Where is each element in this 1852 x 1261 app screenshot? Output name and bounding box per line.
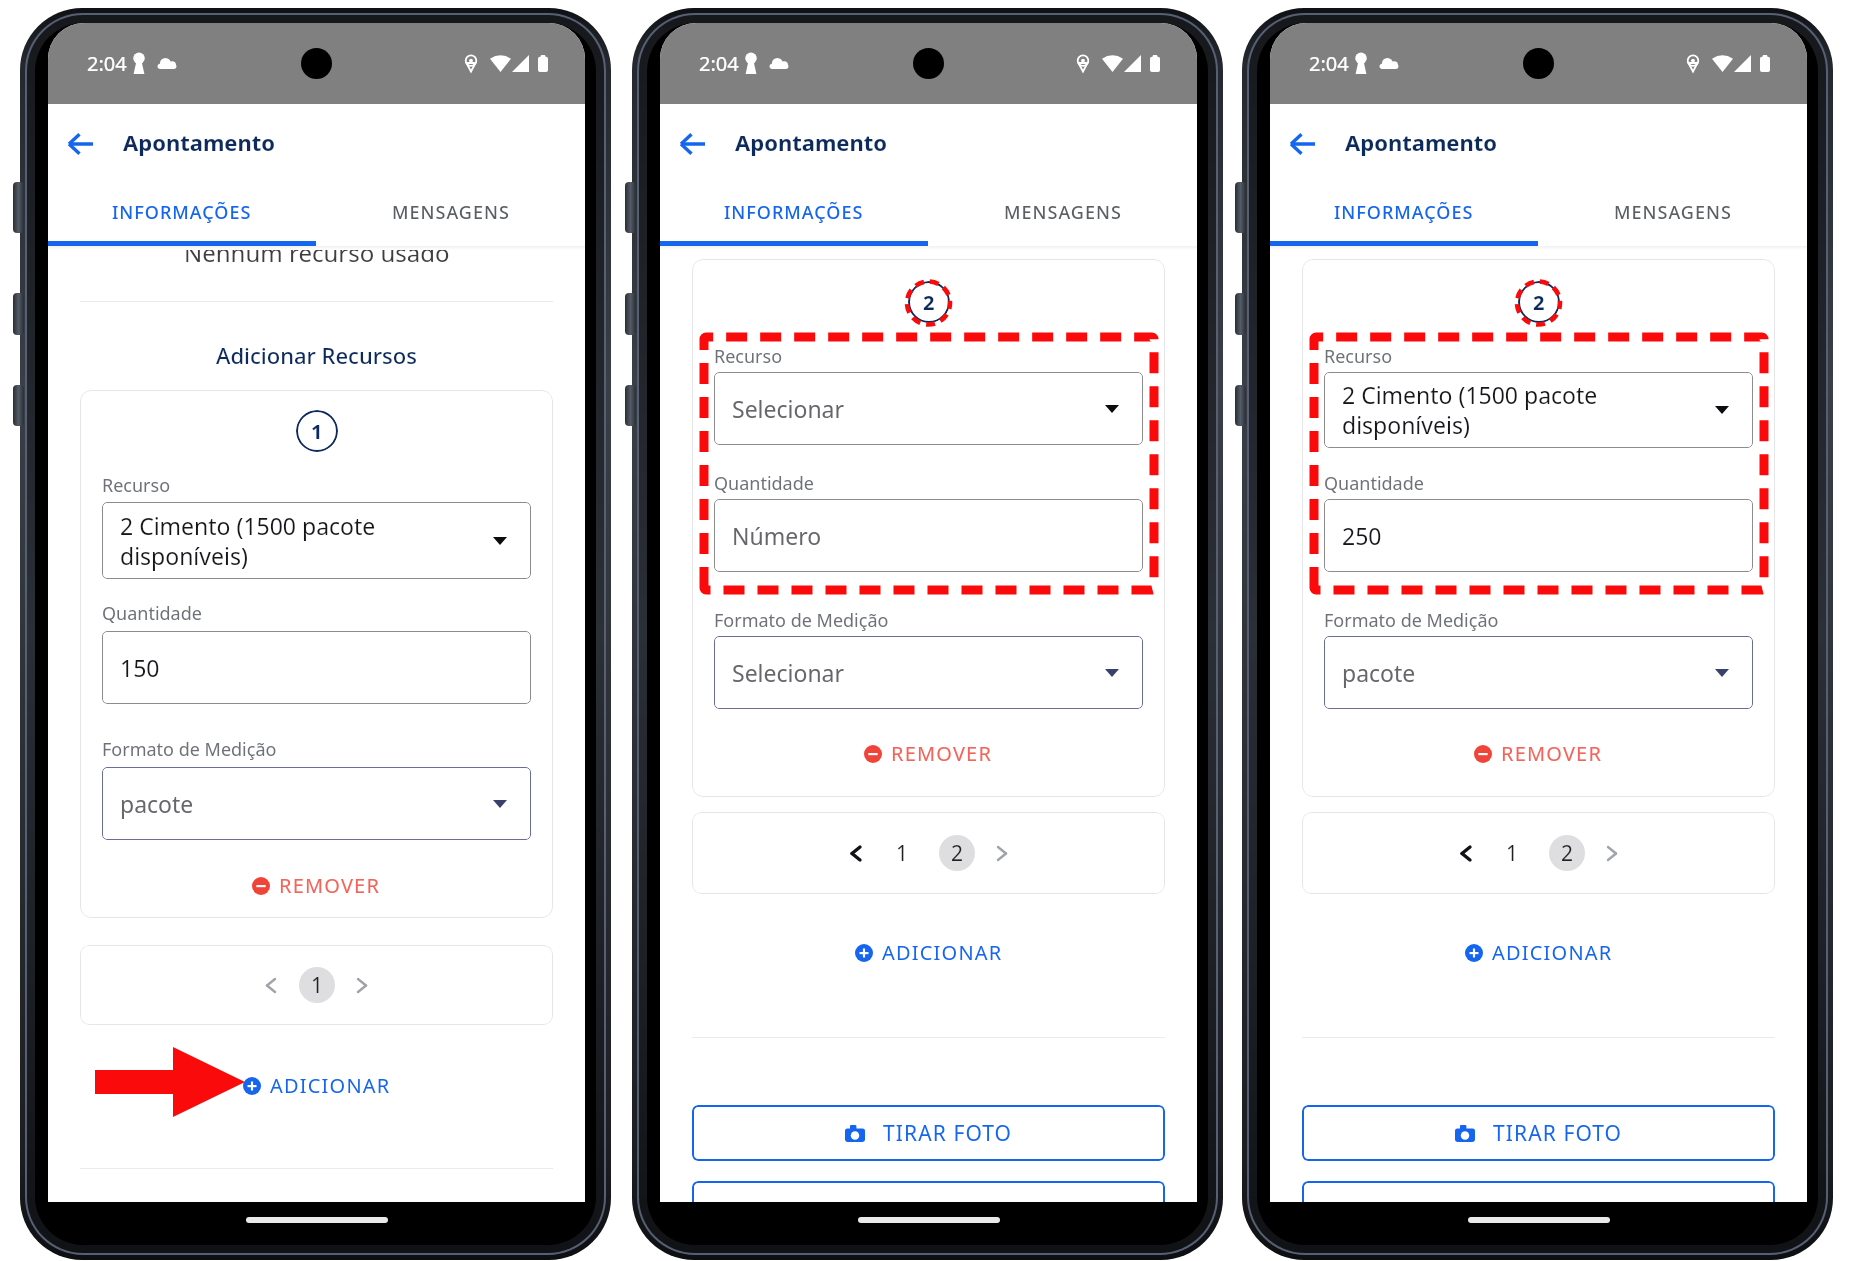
staticText: 2 [1533, 289, 1545, 316]
button[interactable]: Anterior [1448, 835, 1484, 871]
button[interactable]: Anexar arquivo [692, 1181, 1165, 1202]
staticText: Recurso [102, 473, 171, 498]
staticText: REMOVER [279, 872, 381, 899]
button[interactable]: Selecionar [714, 372, 1143, 445]
button[interactable]: INFORMAÇÕES [48, 184, 316, 241]
button[interactable]: Anterior [253, 967, 289, 1003]
button[interactable]: 1 [884, 835, 920, 871]
staticText: Formato de Medição [102, 737, 277, 762]
staticText: 1 [896, 839, 909, 868]
button[interactable]: Anexar arquivo [1302, 1181, 1775, 1202]
staticText: 2 Cimento (1500 pacote disponíveis) [120, 510, 376, 572]
staticText: Formato de Medição [714, 608, 889, 633]
staticText: MENSAGENS [1004, 200, 1122, 225]
button[interactable]: INFORMAÇÕES [660, 184, 928, 241]
button[interactable]: MENSAGENS [316, 184, 585, 241]
staticText: Quantidade [714, 471, 814, 496]
button[interactable]: Próximo [1594, 835, 1630, 871]
staticText: Recurso [714, 344, 783, 369]
button[interactable]: 2 Cimento (1500 pacote disponíveis) [1324, 372, 1753, 448]
staticText: REMOVER [1501, 740, 1603, 767]
button[interactable]: 2 [1549, 835, 1585, 871]
button[interactable]: 2 Cimento (1500 pacote disponíveis) [102, 502, 531, 579]
button[interactable]: Voltar [669, 121, 715, 167]
staticText: TIRAR FOTO [1493, 1119, 1623, 1148]
button[interactable]: ADICIONAR [849, 933, 1009, 972]
staticText: 2 [951, 839, 964, 868]
staticText: ADICIONAR [270, 1072, 391, 1099]
button[interactable]: INFORMAÇÕES [1270, 184, 1538, 241]
button[interactable]: pacote [1324, 636, 1753, 709]
button[interactable]: TIRAR FOTO [692, 1105, 1165, 1161]
staticText: Adicionar Recursos [216, 340, 417, 370]
button[interactable]: ADICIONAR [1459, 933, 1619, 972]
button[interactable]: Voltar [1279, 121, 1325, 167]
staticText: Apontamento [123, 127, 276, 157]
button[interactable]: Próximo [344, 967, 380, 1003]
staticText: REMOVER [891, 740, 993, 767]
button[interactable]: Voltar [57, 121, 103, 167]
staticText: Número [732, 520, 822, 551]
button[interactable]: REMOVER [858, 734, 999, 773]
button[interactable]: TIRAR FOTO [1302, 1105, 1775, 1161]
button[interactable]: 150 [102, 631, 531, 704]
staticText: Selecionar [732, 657, 845, 688]
staticText: 2 Cimento (1500 pacote disponíveis) [1342, 379, 1598, 441]
staticText: MENSAGENS [392, 200, 510, 225]
staticText: 1 [1506, 839, 1519, 868]
staticText: Apontamento [735, 127, 888, 157]
staticText: Nenhum recurso usado [184, 236, 450, 269]
staticText: Selecionar [732, 393, 845, 424]
staticText: TIRAR FOTO [883, 1119, 1013, 1148]
button[interactable]: Próximo [984, 835, 1020, 871]
button[interactable]: MENSAGENS [928, 184, 1197, 241]
staticText: 250 [1342, 520, 1382, 551]
button[interactable]: Número [714, 499, 1143, 572]
button[interactable]: 1 [1494, 835, 1530, 871]
staticText: 2 [1561, 839, 1574, 868]
staticText: INFORMAÇÕES [1334, 200, 1474, 225]
staticText: pacote [1342, 657, 1416, 688]
staticText: INFORMAÇÕES [724, 200, 864, 225]
staticText: Recurso [1324, 344, 1393, 369]
staticText: 2 [923, 289, 935, 316]
button[interactable]: Anterior [838, 835, 874, 871]
staticText: ADICIONAR [882, 939, 1003, 966]
staticText: 150 [120, 652, 160, 683]
staticText: Formato de Medição [1324, 608, 1499, 633]
button[interactable]: pacote [102, 767, 531, 840]
staticText: Quantidade [1324, 471, 1424, 496]
staticText: Apontamento [1345, 127, 1498, 157]
staticText: 2:04 [87, 50, 127, 77]
staticText: 2:04 [699, 50, 739, 77]
button[interactable]: MENSAGENS [1538, 184, 1807, 241]
button[interactable]: 1 [299, 967, 335, 1003]
button[interactable]: ADICIONAR [237, 1066, 397, 1105]
button[interactable]: REMOVER [246, 866, 387, 905]
button[interactable]: REMOVER [1468, 734, 1609, 773]
button[interactable]: 2 [939, 835, 975, 871]
button[interactable]: Selecionar [714, 636, 1143, 709]
staticText: Quantidade [102, 601, 202, 626]
staticText: MENSAGENS [1614, 200, 1732, 225]
staticText: ADICIONAR [1492, 939, 1613, 966]
staticText: 1 [311, 418, 323, 445]
staticText: 2:04 [1309, 50, 1349, 77]
staticText: pacote [120, 788, 194, 819]
staticText: INFORMAÇÕES [112, 200, 252, 225]
button[interactable]: 250 [1324, 499, 1753, 572]
staticText: 1 [311, 971, 324, 1000]
